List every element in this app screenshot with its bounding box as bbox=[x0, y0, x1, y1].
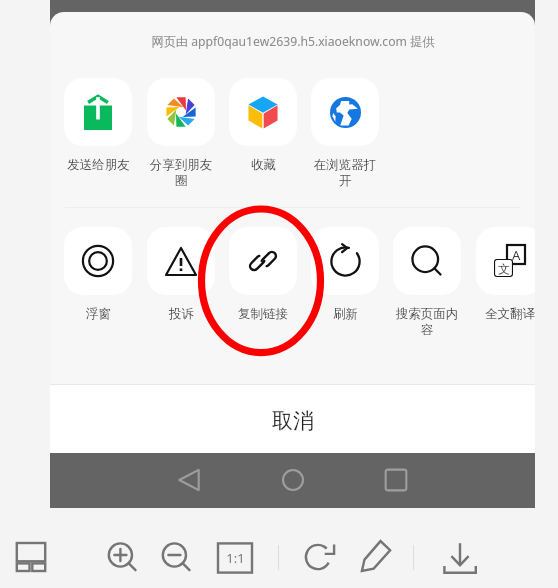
button[interactable]: Thumbnails bbox=[13, 539, 49, 575]
staticText: 分享到朋友圈 bbox=[144, 157, 218, 188]
button[interactable]: 取消 bbox=[50, 385, 535, 453]
button[interactable]: 分享到朋友圈 bbox=[144, 78, 218, 190]
staticText: 浮窗 bbox=[86, 306, 111, 322]
staticText: 发送给朋友 bbox=[67, 157, 130, 173]
staticText: 1:1 bbox=[226, 549, 245, 567]
staticText: A bbox=[512, 246, 521, 264]
button[interactable]: Zoom out bbox=[158, 539, 194, 575]
staticText: 网页由 appf0qau1ew2639.h5.xiaoeknow.com 提供 bbox=[151, 33, 435, 50]
button[interactable]: Recents bbox=[377, 461, 415, 499]
staticText: 文 bbox=[498, 261, 510, 276]
button[interactable]: 发送给朋友 bbox=[61, 78, 135, 190]
button[interactable]: A bbox=[473, 227, 535, 339]
button[interactable]: Back bbox=[170, 461, 208, 499]
button[interactable]: 投诉 bbox=[144, 227, 218, 339]
button[interactable]: Home bbox=[274, 461, 312, 499]
staticText: 收藏 bbox=[251, 157, 276, 173]
staticText: 全文翻译 bbox=[485, 306, 535, 322]
button[interactable]: 复制链接 bbox=[226, 227, 300, 339]
staticText: 复制链接 bbox=[238, 306, 288, 322]
staticText: 刷新 bbox=[333, 306, 358, 322]
button[interactable]: Zoom in bbox=[104, 539, 140, 575]
staticText: 投诉 bbox=[169, 306, 194, 322]
button[interactable]: Rotate bbox=[299, 538, 337, 576]
staticText: 在浏览器打开 bbox=[308, 157, 382, 188]
button[interactable]: 收藏 bbox=[226, 78, 300, 190]
button[interactable]: Download bbox=[441, 539, 479, 577]
button[interactable]: 在浏览器打开 bbox=[308, 78, 382, 190]
button[interactable]: 搜索页面内容 bbox=[390, 227, 464, 339]
button[interactable]: 刷新 bbox=[308, 227, 382, 339]
staticText: 搜索页面内容 bbox=[390, 306, 464, 337]
button[interactable]: 浮窗 bbox=[61, 227, 135, 339]
button[interactable]: Actual size bbox=[217, 540, 253, 576]
button[interactable]: Edit bbox=[357, 537, 395, 575]
staticText: 取消 bbox=[272, 408, 314, 434]
